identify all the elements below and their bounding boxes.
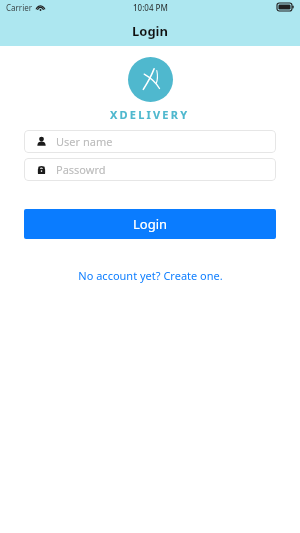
staticText: No account yet? Create one. <box>78 268 223 283</box>
button[interactable]: User name <box>24 130 276 153</box>
staticText: Passowrd <box>56 162 106 177</box>
staticText: User name <box>56 134 113 149</box>
staticText: Carrier <box>6 2 33 13</box>
staticText: 10:04 PM <box>133 2 168 13</box>
staticText: XDELIVERY <box>110 107 190 122</box>
button[interactable]: Passowrd <box>24 158 276 181</box>
staticText: Login <box>133 215 168 233</box>
button[interactable]: Login <box>24 209 276 239</box>
staticText: Login <box>132 22 168 40</box>
button[interactable]: No account yet? Create one. <box>70 265 231 286</box>
